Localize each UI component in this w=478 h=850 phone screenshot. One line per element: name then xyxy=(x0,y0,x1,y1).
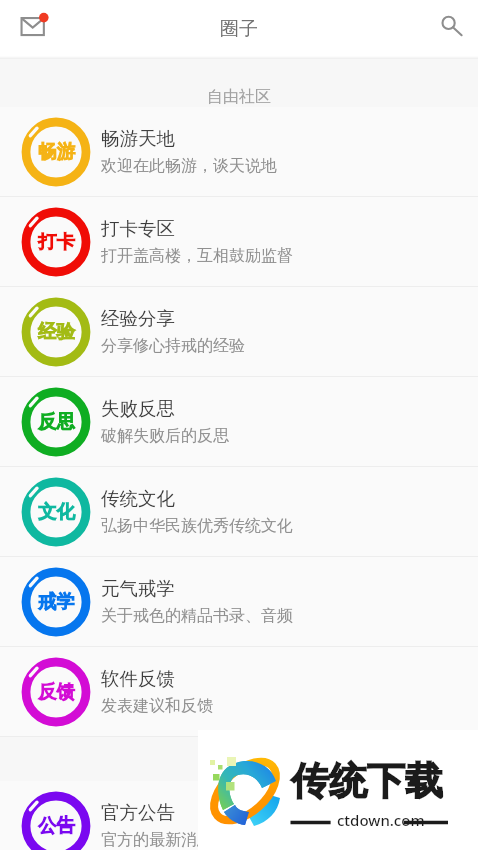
button[interactable]: Messages xyxy=(0,0,58,58)
staticText: 欢迎在此畅游，谈天说地 xyxy=(101,156,277,176)
staticText: 官方的最新消息 xyxy=(101,830,213,850)
staticText: 关于戒色的精品书录、音频 xyxy=(101,606,293,626)
staticText: 发表建议和反馈 xyxy=(101,696,213,716)
button[interactable]: 经验 xyxy=(0,287,478,377)
staticText: 自由社区 xyxy=(207,87,271,107)
button[interactable]: 打卡 xyxy=(0,197,478,287)
staticText: 打卡专区 xyxy=(101,217,175,240)
staticText: 打卡 xyxy=(38,230,75,253)
staticText: 反思 xyxy=(38,410,75,433)
button[interactable]: 反思 xyxy=(0,377,478,467)
staticText: 传统下载 xyxy=(291,757,443,805)
button[interactable]: 反馈 xyxy=(0,647,478,737)
staticText: 公告 xyxy=(38,814,75,837)
staticText: 经验分享 xyxy=(101,307,175,330)
staticText: 弘扬中华民族优秀传统文化 xyxy=(101,516,293,536)
staticText: 破解失败后的反思 xyxy=(101,426,229,446)
staticText: 失败反思 xyxy=(101,397,175,420)
staticText: 戒学 xyxy=(38,590,75,613)
staticText: 软件反馈 xyxy=(101,667,175,690)
staticText: 官方服务 xyxy=(207,761,271,781)
button[interactable]: 公告 xyxy=(0,781,478,850)
staticText: 反馈 xyxy=(38,680,75,703)
staticText: 经验 xyxy=(38,320,75,343)
staticText: 畅游 xyxy=(38,140,75,163)
staticText: 打开盖高楼，互相鼓励监督 xyxy=(101,246,293,266)
button[interactable]: 文化 xyxy=(0,467,478,557)
staticText: 畅游天地 xyxy=(101,127,175,150)
staticText: 圈子 xyxy=(220,17,258,41)
staticText: 官方公告 xyxy=(101,801,175,824)
staticText: ctdown.com xyxy=(337,810,425,830)
button[interactable]: 戒学 xyxy=(0,557,478,647)
staticText: 文化 xyxy=(38,500,75,523)
staticText: 传统文化 xyxy=(101,487,175,510)
staticText: 元气戒学 xyxy=(101,577,175,600)
staticText: 分享修心持戒的经验 xyxy=(101,336,245,356)
button[interactable]: 畅游 xyxy=(0,107,478,197)
button[interactable]: Search xyxy=(420,0,478,58)
